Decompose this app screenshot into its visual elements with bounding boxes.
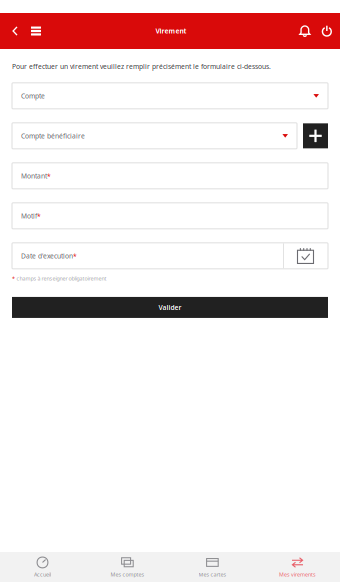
staticText: Motif	[21, 211, 37, 220]
staticText: Mes cartes	[198, 571, 226, 578]
button[interactable]: Back	[6, 13, 24, 49]
staticText: Mes virements	[279, 571, 316, 578]
staticText: Valider	[158, 303, 181, 312]
staticText: Mes comptes	[110, 571, 144, 578]
button[interactable]: Add beneficiary	[303, 123, 328, 148]
button[interactable]: Notifications	[294, 13, 316, 49]
staticText: *	[12, 275, 15, 282]
staticText: *	[37, 211, 41, 220]
button[interactable]: Mes virements	[255, 552, 340, 582]
staticText: Montant	[21, 171, 47, 180]
button[interactable]: Log out	[316, 13, 338, 49]
button[interactable]: Compte bénéficiaire	[12, 123, 297, 149]
staticText: *	[47, 171, 51, 180]
staticText: Pour effectuer un virement veuillez remp…	[12, 62, 271, 71]
button[interactable]: Menu	[24, 13, 48, 49]
staticText: Compte	[21, 91, 45, 100]
button[interactable]: Date d'execution	[12, 243, 328, 269]
staticText: Virement	[155, 27, 186, 35]
button[interactable]: Valider	[12, 297, 328, 318]
button[interactable]: Montant	[12, 163, 328, 189]
staticText: *	[73, 251, 77, 260]
staticText: Accueil	[34, 571, 51, 578]
staticText: champs à renseigner obligatoirement	[16, 275, 106, 282]
button[interactable]: Mes comptes	[85, 552, 170, 582]
button[interactable]: Accueil	[0, 552, 85, 582]
staticText: Date d'execution	[21, 251, 73, 260]
staticText: Compte bénéficiaire	[21, 131, 85, 140]
button[interactable]: Compte	[12, 83, 328, 109]
button[interactable]: Motif	[12, 203, 328, 229]
button[interactable]: Mes cartes	[170, 552, 255, 582]
